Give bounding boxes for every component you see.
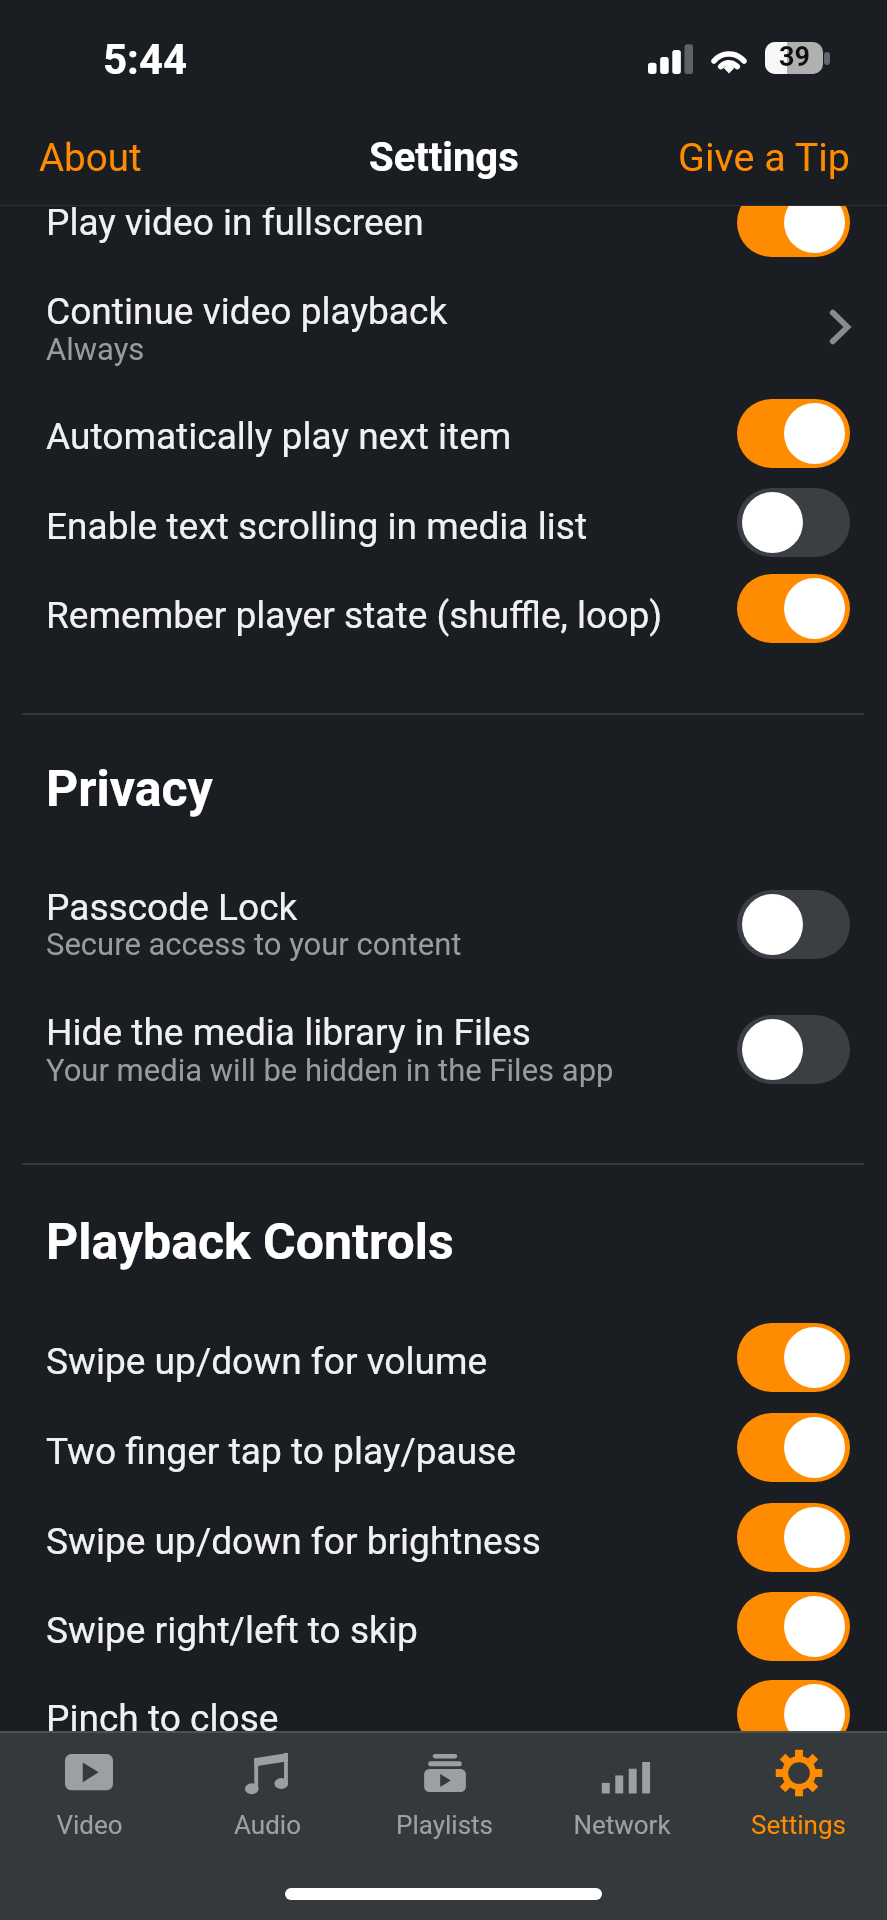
staticText: Playlists: [396, 1810, 493, 1840]
staticText: Settings: [369, 134, 519, 181]
button[interactable]: Settings: [710, 1731, 887, 1920]
button[interactable]: Toggle: [737, 890, 850, 959]
staticText: Privacy: [46, 760, 213, 819]
staticText: Always: [46, 331, 145, 367]
button[interactable]: Toggle: [737, 1680, 850, 1749]
button[interactable]: Toggle: [737, 205, 850, 257]
button[interactable]: Toggle: [737, 1503, 850, 1572]
staticText: 5:44: [103, 35, 188, 84]
staticText: 39: [779, 42, 810, 73]
button[interactable]: Toggle: [737, 1592, 850, 1661]
button[interactable]: Give a Tip: [654, 120, 887, 194]
button[interactable]: Network: [533, 1731, 710, 1920]
button[interactable]: Toggle: [737, 1015, 850, 1084]
button[interactable]: Toggle: [737, 1413, 850, 1482]
button[interactable]: Toggle: [737, 399, 850, 468]
staticText: Swipe up/down for brightness: [46, 1520, 541, 1563]
staticText: Continue video playback: [46, 290, 448, 333]
button[interactable]: Continue video playback options: [816, 305, 860, 349]
staticText: Passcode Lock: [46, 886, 298, 929]
staticText: Remember player state (shuffle, loop): [46, 594, 663, 637]
staticText: Give a Tip: [678, 134, 851, 180]
staticText: Your media will be hidden in the Files a…: [46, 1052, 614, 1088]
staticText: Secure access to your content: [46, 926, 462, 962]
staticText: Network: [573, 1810, 671, 1840]
button[interactable]: Playlists: [356, 1731, 533, 1920]
staticText: Swipe right/left to skip: [46, 1609, 418, 1652]
staticText: Playback Controls: [46, 1213, 454, 1272]
staticText: Video: [56, 1810, 123, 1840]
staticText: Pinch to close: [46, 1697, 279, 1740]
button[interactable]: About: [0, 121, 166, 194]
button[interactable]: Toggle: [737, 574, 850, 643]
staticText: Settings: [751, 1810, 846, 1840]
button[interactable]: Toggle: [737, 488, 850, 557]
staticText: Automatically play next item: [46, 415, 512, 458]
staticText: About: [39, 135, 142, 180]
button[interactable]: Toggle: [737, 1323, 850, 1392]
staticText: Two finger tap to play/pause: [46, 1430, 516, 1473]
staticText: Swipe up/down for volume: [46, 1340, 488, 1383]
staticText: Hide the media library in Files: [46, 1011, 531, 1054]
button[interactable]: Audio: [178, 1731, 356, 1920]
staticText: Audio: [234, 1810, 301, 1840]
staticText: Play video in fullscreen: [46, 205, 424, 244]
staticText: Enable text scrolling in media list: [46, 505, 588, 548]
button[interactable]: Video: [0, 1731, 178, 1920]
